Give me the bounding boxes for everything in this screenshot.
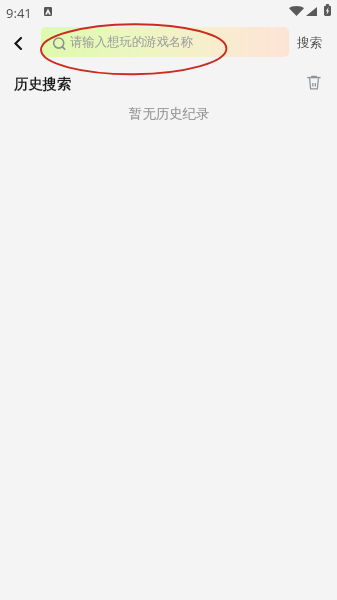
button[interactable]: Clear search history xyxy=(304,73,324,93)
button[interactable]: 历史搜索 xyxy=(14,74,71,93)
staticText: 搜索 xyxy=(297,35,323,51)
button[interactable]: 搜索 xyxy=(290,27,330,58)
button[interactable]: Back xyxy=(3,27,33,58)
staticText: 暂无历史纪录 xyxy=(129,105,210,122)
staticText: 9:41 xyxy=(6,4,32,22)
button[interactable]: 请输入想玩的游戏名称 xyxy=(41,27,289,57)
staticText: 历史搜索 xyxy=(14,75,71,93)
staticText: 请输入想玩的游戏名称 xyxy=(70,34,194,50)
